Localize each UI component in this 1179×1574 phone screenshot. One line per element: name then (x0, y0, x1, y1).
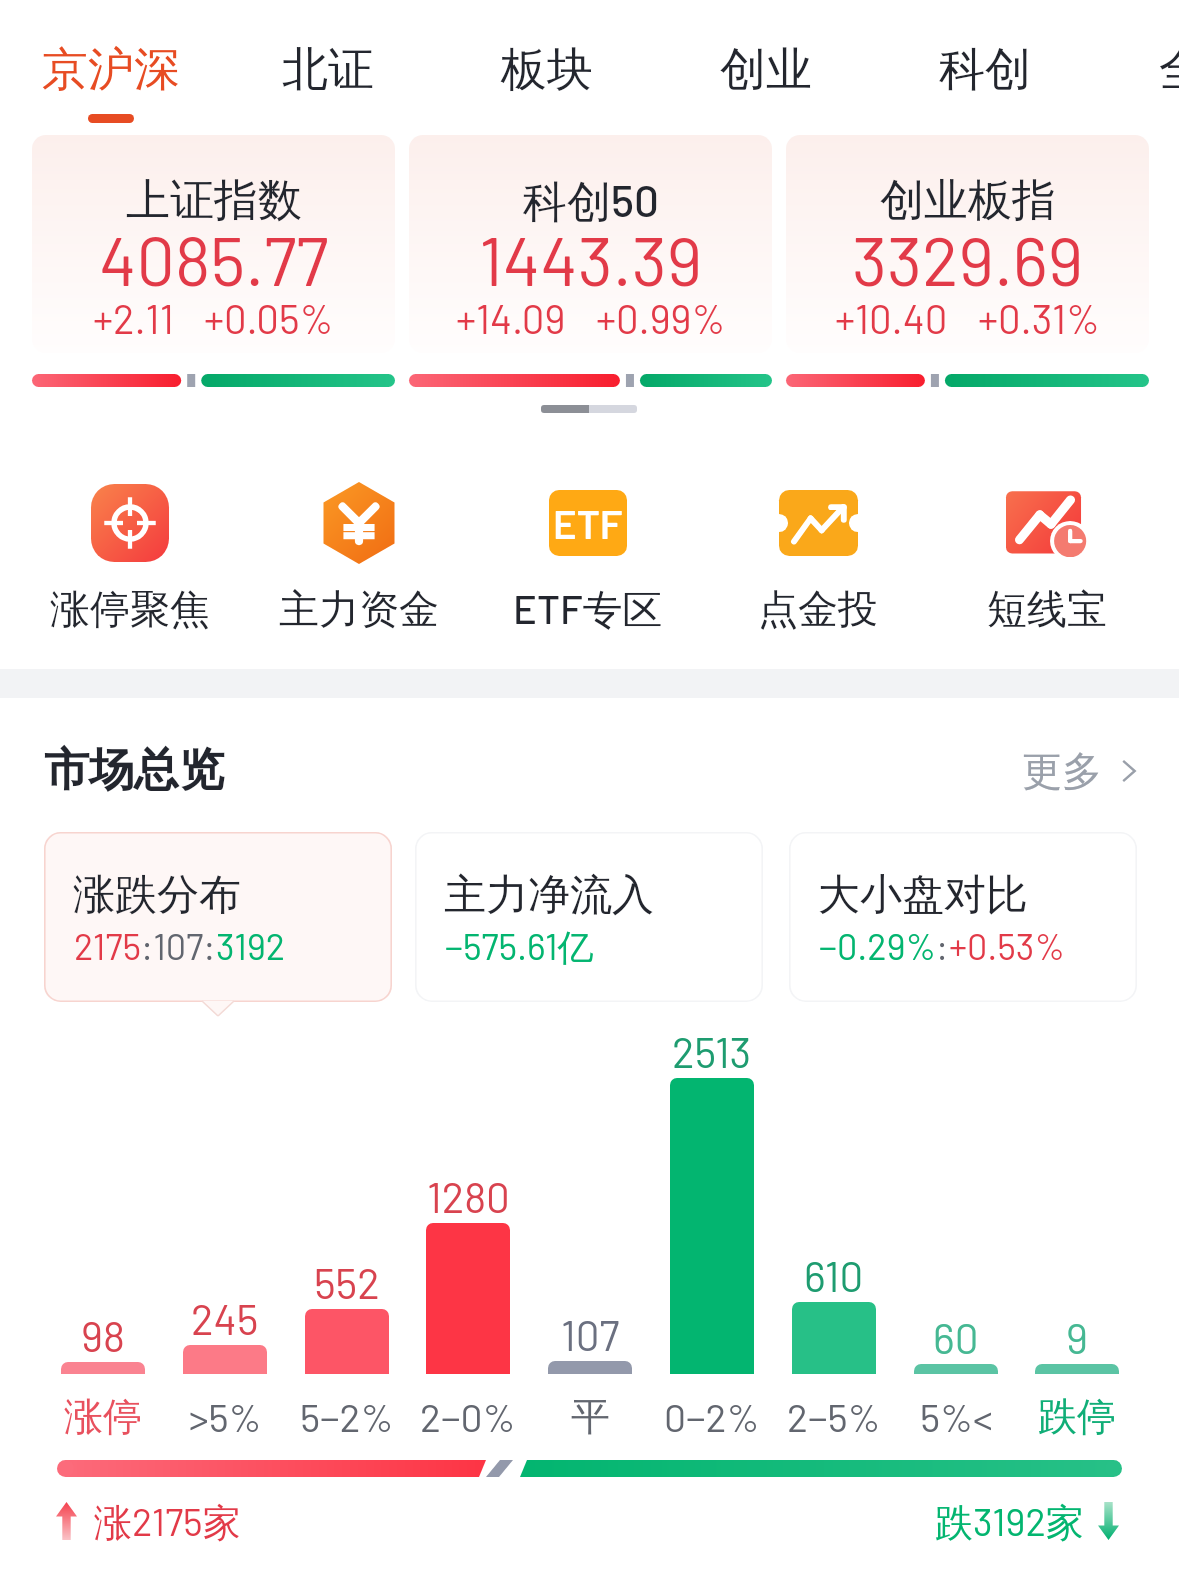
staticText: 107 (561, 1309, 620, 1359)
button[interactable]: ETF (478, 476, 698, 636)
staticText: 全部 (1159, 41, 1179, 99)
button[interactable]: 创业板指 (786, 135, 1149, 353)
staticText: 板块 (501, 41, 593, 99)
staticText: 2175 (74, 924, 141, 967)
staticText: +0.05% (204, 294, 334, 342)
button[interactable]: 涨停聚焦 (20, 476, 240, 636)
staticText: : (936, 924, 949, 967)
staticText: +0.31% (978, 294, 1100, 342)
button[interactable]: 更多 (1022, 746, 1140, 796)
staticText: 市场总览 (44, 742, 224, 799)
button[interactable]: 北证 (228, 0, 428, 128)
button[interactable]: 主力净流入 (415, 832, 763, 1002)
staticText: 5%< (920, 1393, 993, 1440)
staticText: 大小盘对比 (818, 869, 1028, 922)
staticText: 京沪深 (42, 41, 180, 99)
staticText: 552 (314, 1257, 380, 1307)
staticText: 245 (191, 1293, 259, 1343)
staticText: 涨2175家 (94, 1498, 241, 1547)
staticText: 9 (1066, 1312, 1088, 1362)
button[interactable]: 创业 (666, 0, 866, 128)
staticText: 涨跌分布 (73, 869, 241, 922)
button[interactable]: 上证指数 (32, 135, 395, 353)
staticText: +10.40 (835, 294, 948, 342)
staticText: 2−0% (420, 1393, 516, 1440)
button[interactable]: 短线宝 (937, 476, 1157, 636)
button[interactable]: 主力资金 (249, 476, 469, 636)
button[interactable]: 大小盘对比 (789, 832, 1137, 1002)
staticText: 0−2% (664, 1393, 760, 1440)
staticText: 北证 (282, 41, 374, 99)
staticText: :107: (141, 924, 216, 967)
staticText: +0.53% (949, 924, 1065, 967)
staticText: 跌3192家 (935, 1498, 1084, 1547)
staticText: +0.99% (596, 294, 726, 342)
staticText: 2513 (672, 1026, 752, 1076)
button[interactable]: 全部 (1105, 0, 1179, 128)
staticText: 3192 (216, 924, 285, 967)
staticText: 主力净流入 (444, 869, 654, 922)
staticText: 科创 (939, 41, 1031, 99)
staticText: 4085.77 (99, 218, 329, 300)
staticText: 3329.69 (852, 218, 1084, 300)
staticText: ETF专区 (513, 584, 663, 636)
button[interactable]: 科创 (885, 0, 1085, 128)
staticText: 2−5% (787, 1393, 881, 1440)
staticText: 上证指数 (126, 173, 302, 228)
staticText: 5−2% (300, 1393, 394, 1440)
staticText: 涨停 (64, 1392, 142, 1441)
button[interactable]: 涨跌分布 (44, 832, 392, 1002)
button[interactable]: 京沪深 (11, 0, 211, 128)
staticText: 短线宝 (987, 584, 1107, 634)
staticText: 60 (933, 1312, 979, 1362)
staticText: 涨停聚焦 (50, 584, 210, 634)
staticText: 610 (804, 1250, 864, 1300)
staticText: 创业板指 (880, 173, 1056, 228)
staticText: 点金投 (758, 584, 878, 634)
staticText: −575.61亿 (445, 924, 594, 971)
staticText: −0.29% (819, 924, 936, 967)
staticText: >5% (189, 1393, 262, 1440)
button[interactable]: 科创50 (409, 135, 772, 353)
staticText: 更多 (1022, 746, 1102, 796)
staticText: 1443.39 (479, 218, 703, 300)
staticText: 98 (81, 1310, 125, 1360)
staticText: 主力资金 (279, 584, 439, 634)
staticText: +14.09 (456, 294, 566, 342)
staticText: 跌停 (1038, 1392, 1116, 1441)
button[interactable]: 点金投 (708, 476, 928, 636)
staticText: +2.11 (93, 294, 174, 342)
staticText: ETF (553, 499, 623, 547)
staticText: 平 (571, 1392, 610, 1441)
staticText: 创业 (720, 41, 812, 99)
button[interactable]: 板块 (447, 0, 647, 128)
staticText: 科创50 (523, 173, 659, 230)
staticText: 1280 (427, 1171, 510, 1221)
